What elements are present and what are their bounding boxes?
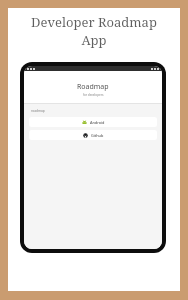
other: Android roadmap — [82, 120, 87, 125]
button[interactable]: Github roadmap — [29, 130, 157, 140]
staticText: Github — [91, 133, 104, 138]
staticText: Android — [90, 120, 105, 125]
staticText: for developers — [83, 93, 104, 97]
staticText: Developer Roadmap — [31, 13, 157, 31]
button[interactable]: Android roadmap — [29, 117, 157, 127]
other: Github roadmap — [83, 133, 88, 138]
staticText: roadmap — [31, 109, 45, 113]
staticText: Roadmap — [77, 82, 109, 92]
staticText: App — [81, 31, 107, 49]
